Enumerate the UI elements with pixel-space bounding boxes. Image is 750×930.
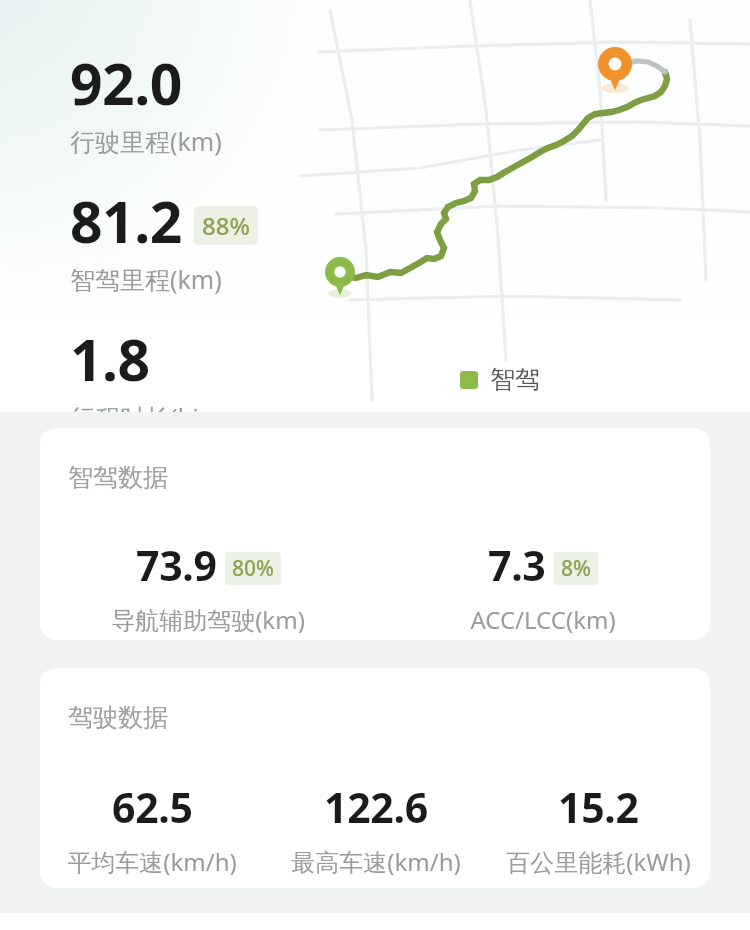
staticText: 80% <box>232 554 274 583</box>
button[interactable]: 驾驶数据 <box>40 668 710 888</box>
staticText: 15.2 <box>558 779 639 835</box>
staticText: 驾驶数据 <box>68 702 168 733</box>
staticText: 智驾数据 <box>68 462 168 493</box>
staticText: ACC/LCC(km) <box>470 603 616 636</box>
staticText: 平均车速(km/h) <box>67 845 237 878</box>
staticText: 百公里能耗(kWh) <box>506 845 691 878</box>
staticText: 智驾里程(km) <box>70 262 222 296</box>
staticText: 行驶里程(km) <box>70 124 222 158</box>
staticText: 73.9 <box>136 537 217 593</box>
button[interactable]: 1.8 <box>70 320 201 412</box>
staticText: 88% <box>202 209 250 242</box>
staticText: 81.2 <box>70 182 182 260</box>
staticText: 最高车速(km/h) <box>291 845 461 878</box>
staticText: 8% <box>561 554 591 583</box>
staticText: 122.6 <box>324 779 428 835</box>
button[interactable]: 92.0 <box>70 44 222 158</box>
staticText: 导航辅助驾驶(km) <box>111 603 305 636</box>
staticText: 92.0 <box>70 44 182 122</box>
button[interactable]: 智驾数据 <box>40 428 710 640</box>
button[interactable]: 81.2 <box>70 182 258 296</box>
button[interactable]: 智驾 <box>458 362 542 397</box>
staticText: 62.5 <box>112 779 193 835</box>
staticText: 智驾 <box>490 364 540 395</box>
staticText: 行程时长(h) <box>70 400 201 412</box>
staticText: 1.8 <box>70 320 150 398</box>
staticText: 7.3 <box>488 537 546 593</box>
